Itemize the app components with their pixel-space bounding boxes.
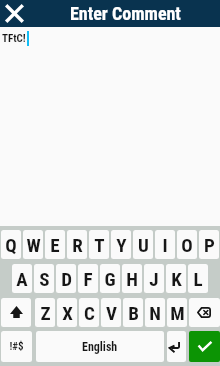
button[interactable]: !#$: [1, 331, 32, 362]
staticText: U: [138, 234, 149, 256]
button[interactable]: O: [177, 230, 197, 259]
staticText: C: [84, 302, 95, 324]
button[interactable]: S: [34, 264, 54, 293]
button[interactable]: M: [167, 298, 187, 327]
button[interactable]: P: [199, 230, 219, 259]
staticText: Q: [5, 234, 17, 256]
staticText: K: [171, 268, 182, 290]
button[interactable]: Enter: [167, 331, 186, 362]
staticText: L: [193, 268, 203, 290]
staticText: I: [162, 234, 168, 256]
staticText: TFtC!: [2, 32, 26, 45]
staticText: T: [94, 234, 105, 256]
button[interactable]: C: [79, 298, 99, 327]
button[interactable]: Close: [0, 0, 28, 27]
staticText: E: [50, 234, 60, 256]
button[interactable]: D: [56, 264, 76, 293]
staticText: X: [62, 302, 73, 324]
button[interactable]: I: [155, 230, 175, 259]
staticText: Y: [116, 234, 127, 256]
button[interactable]: Y: [111, 230, 131, 259]
button[interactable]: N: [145, 298, 165, 327]
button[interactable]: Q: [1, 230, 21, 259]
button[interactable]: R: [67, 230, 87, 259]
staticText: G: [104, 268, 116, 290]
staticText: Enter Comment: [70, 3, 181, 24]
staticText: A: [16, 268, 28, 290]
button[interactable]: J: [144, 264, 164, 293]
button[interactable]: G: [100, 264, 120, 293]
staticText: !#$: [9, 340, 24, 353]
button[interactable]: English: [36, 331, 164, 362]
button[interactable]: V: [101, 298, 121, 327]
staticText: P: [204, 234, 215, 256]
button[interactable]: E: [45, 230, 65, 259]
staticText: S: [39, 268, 50, 290]
button[interactable]: F: [78, 264, 98, 293]
button[interactable]: Shift: [1, 298, 31, 327]
button[interactable]: Done: [189, 331, 220, 362]
staticText: J: [149, 268, 159, 290]
staticText: D: [61, 268, 72, 290]
button[interactable]: K: [166, 264, 186, 293]
staticText: R: [72, 234, 83, 256]
button[interactable]: L: [188, 264, 208, 293]
button[interactable]: B: [123, 298, 143, 327]
button[interactable]: X: [57, 298, 77, 327]
button[interactable]: H: [122, 264, 142, 293]
staticText: H: [126, 268, 138, 290]
staticText: English: [82, 340, 118, 354]
staticText: N: [149, 302, 161, 324]
staticText: M: [170, 302, 185, 324]
button[interactable]: W: [23, 230, 43, 259]
button[interactable]: Z: [35, 298, 55, 327]
staticText: F: [83, 268, 93, 290]
staticText: O: [181, 234, 193, 256]
staticText: W: [26, 234, 41, 256]
button[interactable]: T: [89, 230, 109, 259]
button[interactable]: A: [12, 264, 32, 293]
staticText: B: [128, 302, 139, 324]
staticText: V: [106, 302, 117, 324]
staticText: Z: [40, 302, 51, 324]
button[interactable]: Backspace: [189, 298, 220, 327]
button[interactable]: U: [133, 230, 153, 259]
